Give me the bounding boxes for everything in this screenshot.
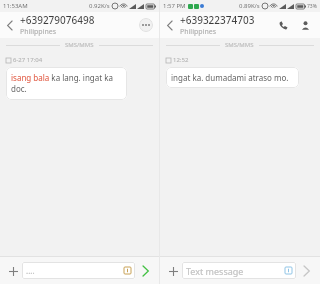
button[interactable]: Call (272, 14, 294, 36)
button[interactable]: Send message (135, 261, 155, 281)
button[interactable]: Back (0, 15, 20, 35)
staticText: 6-27 17:04 (13, 56, 43, 64)
staticText: isang bala ka lang. ingat ka doc. (11, 72, 122, 95)
staticText: .... (26, 265, 35, 276)
staticText: 12:52 (173, 56, 189, 64)
button[interactable]: Text message (182, 262, 296, 279)
button[interactable]: ingat ka. dumadami atraso mo. (166, 67, 299, 88)
button[interactable]: Contact details (294, 14, 316, 36)
staticText: Philippines (20, 27, 57, 37)
staticText: Text message (186, 265, 244, 277)
staticText: 1:57 PM (163, 2, 186, 10)
staticText: Philippines (180, 27, 217, 37)
button[interactable]: .... (22, 262, 135, 279)
button[interactable]: Add attachment (164, 262, 182, 280)
staticText: 0.89K/s (239, 2, 260, 10)
staticText: ingat ka. dumadami atraso mo. (171, 72, 289, 83)
button[interactable]: isang bala ka lang. ingat ka doc. (6, 67, 127, 100)
button[interactable]: More options (139, 18, 153, 32)
button[interactable]: Back (160, 15, 180, 35)
staticText: 0.92K/s (89, 2, 110, 10)
staticText: SMS/MMS (65, 41, 94, 49)
staticText: +639322374703 (180, 13, 255, 27)
staticText: 11:53AM (3, 2, 28, 10)
staticText: SMS/MMS (225, 41, 254, 49)
staticText: 73% (307, 3, 317, 10)
button[interactable]: Send message (296, 261, 316, 281)
button[interactable]: Add attachment (4, 262, 22, 280)
staticText: +639279076498 (20, 13, 95, 27)
